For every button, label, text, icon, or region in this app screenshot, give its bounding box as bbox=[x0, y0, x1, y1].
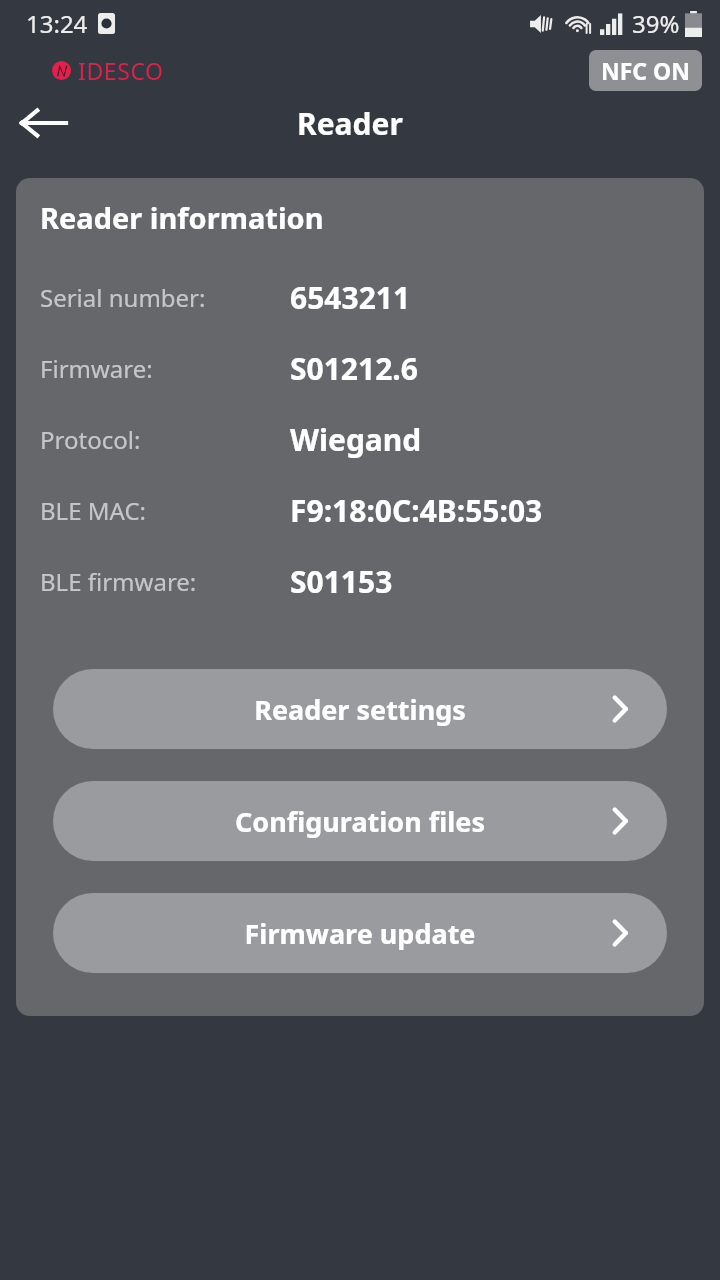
staticText: Wiegand bbox=[290, 419, 422, 460]
button[interactable]: NFC ON bbox=[589, 50, 702, 91]
staticText: Reader bbox=[297, 103, 403, 144]
staticText: Firmware update bbox=[53, 915, 667, 952]
staticText: S01153 bbox=[290, 561, 393, 602]
staticText: Configuration files bbox=[53, 803, 667, 840]
button[interactable]: Configuration files bbox=[53, 781, 667, 861]
staticText: Protocol: bbox=[40, 423, 141, 456]
staticText: Reader information bbox=[40, 198, 324, 237]
button[interactable]: Firmware update bbox=[53, 893, 667, 973]
staticText: IDESCO bbox=[78, 55, 164, 86]
staticText: BLE firmware: bbox=[40, 565, 197, 598]
button[interactable]: Back bbox=[12, 94, 74, 152]
staticText: 6543211 bbox=[290, 277, 411, 318]
staticText: BLE MAC: bbox=[40, 494, 146, 527]
staticText: S01212.6 bbox=[290, 348, 418, 389]
staticText: Firmware: bbox=[40, 352, 153, 385]
staticText: 39% bbox=[632, 7, 680, 40]
staticText: NFC ON bbox=[601, 55, 690, 86]
staticText: Serial number: bbox=[40, 281, 206, 314]
staticText: Reader settings bbox=[53, 691, 667, 728]
staticText: F9:18:0C:4B:55:03 bbox=[290, 490, 543, 531]
button[interactable]: Reader settings bbox=[53, 669, 667, 749]
staticText: 13:24 bbox=[26, 7, 88, 40]
